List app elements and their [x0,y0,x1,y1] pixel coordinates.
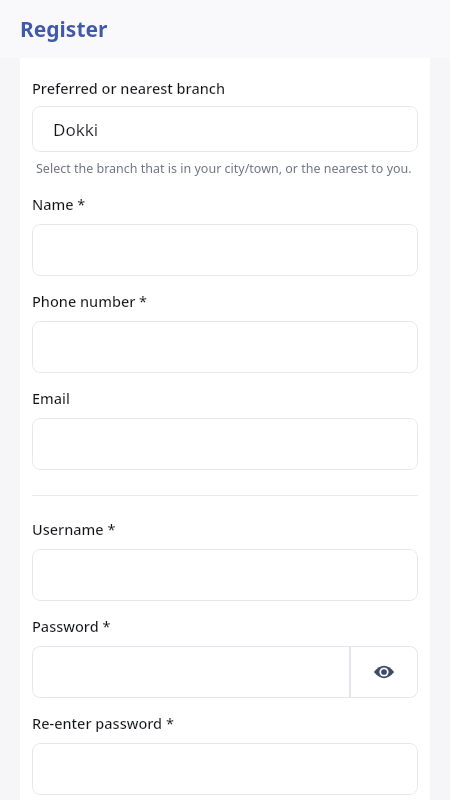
staticText: Dokki [53,118,99,141]
button[interactable] [32,418,418,470]
button[interactable]: Dokki [32,106,418,152]
staticText: Email [32,388,70,408]
staticText: Register [20,15,108,44]
staticText: Password * [32,616,111,636]
button[interactable] [32,321,418,373]
button[interactable] [32,224,418,276]
button[interactable] [32,549,418,601]
staticText: Select the branch that is in your city/t… [36,160,412,177]
staticText: Re-enter password * [32,713,174,733]
staticText: Preferred or nearest branch [32,78,226,98]
staticText: Name * [32,194,86,214]
staticText: Username * [32,519,116,539]
button[interactable] [32,646,350,698]
button[interactable] [32,743,418,795]
staticText: Phone number * [32,291,148,311]
button[interactable]: Show password [350,646,418,698]
